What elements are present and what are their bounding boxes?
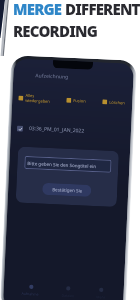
button[interactable]: Bestätigen Sie — [42, 183, 91, 197]
staticText: 03:36_PM_01_JAN_2022 — [29, 125, 85, 134]
other: Dateien — [65, 285, 72, 292]
button[interactable]: Fusion — [65, 97, 87, 105]
staticText: Löschen — [109, 100, 125, 105]
other: Aufnahme — [28, 283, 35, 290]
button[interactable]: Bitte geben Sie den Songtitel ein — [24, 156, 112, 173]
button[interactable]: Aufnahme — [17, 283, 44, 297]
staticText: Bitte geben Sie den Songtitel ein — [27, 160, 96, 169]
button[interactable]: Dateien — [57, 284, 79, 298]
button[interactable]: 03:36_PM_01_JAN_2022 — [17, 124, 125, 136]
button[interactable]: Löschen — [101, 98, 126, 106]
button[interactable]: Mehr — [92, 286, 110, 300]
staticText: Aufzeichnung — [35, 72, 68, 81]
other: Mehr — [98, 286, 105, 294]
staticText: Alles wiedergeben — [25, 93, 50, 104]
staticText: Aufnahme — [21, 291, 40, 297]
staticText: Fusion — [73, 98, 86, 104]
button[interactable]: Alles wiedergeben — [17, 91, 52, 105]
staticText: DIFFERENT — [62, 0, 140, 19]
staticText: RECORDING — [13, 21, 97, 41]
staticText: Bestätigen Sie — [52, 186, 82, 193]
staticText: MERGE — [13, 0, 62, 19]
